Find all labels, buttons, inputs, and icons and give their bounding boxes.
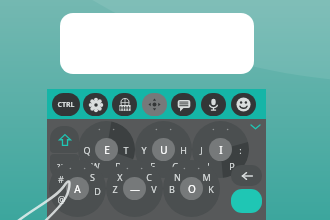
button[interactable]: ?123 bbox=[50, 154, 79, 180]
button[interactable]: Navigate bbox=[142, 93, 167, 116]
staticText: M bbox=[202, 171, 211, 183]
staticText: W bbox=[91, 160, 100, 172]
button[interactable]: B bbox=[163, 160, 220, 217]
staticText: Y bbox=[141, 144, 147, 156]
button[interactable]: Settings bbox=[83, 93, 108, 116]
button[interactable]: E bbox=[95, 138, 118, 161]
button[interactable] bbox=[60, 13, 254, 74]
button[interactable]: Hide keyboard bbox=[248, 119, 262, 133]
button[interactable]: Q bbox=[78, 121, 135, 178]
staticText: N bbox=[174, 171, 181, 183]
button[interactable]: Shift bbox=[50, 126, 79, 153]
staticText: O bbox=[188, 182, 196, 196]
button[interactable]: — bbox=[123, 177, 146, 200]
staticText: @ bbox=[57, 193, 66, 205]
staticText: : bbox=[239, 144, 242, 156]
staticText: P bbox=[229, 160, 235, 172]
staticText: V bbox=[151, 183, 157, 195]
staticText: # bbox=[58, 173, 64, 185]
button[interactable]: Enter bbox=[231, 189, 262, 213]
staticText: C bbox=[146, 171, 152, 183]
button[interactable]: Y bbox=[135, 121, 192, 178]
button[interactable]: Backspace bbox=[231, 165, 262, 186]
staticText: G bbox=[172, 160, 179, 172]
staticText: J bbox=[200, 144, 203, 156]
staticText: F bbox=[150, 160, 155, 172]
staticText: U bbox=[160, 143, 168, 157]
staticText: T bbox=[123, 144, 129, 156]
staticText: H bbox=[180, 144, 187, 156]
staticText: S bbox=[90, 171, 95, 183]
button[interactable]: Voice input bbox=[201, 93, 226, 116]
staticText: K bbox=[208, 183, 214, 195]
staticText: Z bbox=[112, 183, 118, 195]
button[interactable]: Ctrl bbox=[52, 93, 80, 116]
staticText: — bbox=[130, 182, 140, 196]
staticText: Q bbox=[83, 144, 91, 156]
button[interactable]: Change language bbox=[112, 93, 137, 116]
staticText: E bbox=[104, 143, 110, 157]
button[interactable]: A bbox=[66, 177, 89, 200]
button[interactable]: U bbox=[152, 138, 175, 161]
button[interactable]: Messages bbox=[171, 93, 196, 116]
button[interactable]: I bbox=[209, 138, 232, 161]
staticText: I bbox=[219, 143, 223, 157]
button[interactable]: J bbox=[192, 121, 249, 178]
staticText: CTRL bbox=[57, 100, 75, 110]
staticText: A bbox=[74, 182, 81, 196]
button[interactable]: Emoji bbox=[231, 93, 256, 116]
staticText: ?123 bbox=[57, 162, 73, 172]
button[interactable]: O bbox=[180, 177, 203, 200]
staticText: L bbox=[207, 160, 212, 172]
button[interactable]: # bbox=[49, 160, 106, 217]
staticText: R bbox=[115, 160, 121, 172]
staticText: B bbox=[169, 183, 175, 195]
staticText: D bbox=[94, 185, 101, 197]
button[interactable]: Z bbox=[106, 160, 163, 217]
staticText: X bbox=[117, 171, 123, 183]
